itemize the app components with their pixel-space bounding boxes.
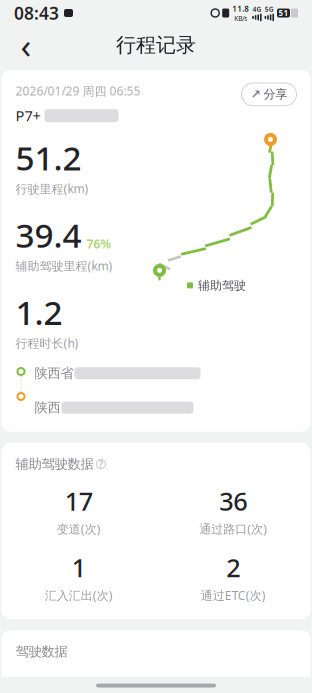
staticText: 36: [219, 484, 247, 518]
staticText: KB/s: [234, 14, 247, 23]
staticText: 14.9: [234, 670, 283, 693]
staticText: 辅助驾驶数据: [15, 456, 93, 472]
staticText: 行程记录: [116, 33, 196, 57]
staticText: 辅助驾驶里程(km): [15, 258, 112, 274]
staticText: P7+: [15, 106, 40, 125]
staticText: ↗: [250, 88, 260, 101]
staticText: 17: [65, 484, 93, 518]
staticText: 76%: [86, 236, 111, 252]
staticText: 47.7: [28, 670, 77, 693]
staticText: 5G: [265, 5, 274, 14]
staticText: 2: [226, 551, 240, 584]
staticText: 1: [72, 551, 86, 584]
staticText: 分享: [263, 87, 287, 102]
staticText: 51.2: [15, 135, 81, 180]
staticText: 行程时长(h): [15, 335, 78, 351]
staticText: 通过ETC(次): [201, 587, 266, 603]
staticText: 汇入汇出(次): [45, 587, 113, 603]
staticText: ?: [99, 458, 103, 470]
staticText: 08:43: [14, 1, 59, 24]
staticText: 陕西: [34, 399, 60, 416]
staticText: 陕西省: [34, 365, 73, 381]
staticText: 辅助驾驶: [198, 278, 246, 293]
staticText: 11.8: [232, 3, 249, 14]
staticText: 2026/01/29 周四 06:55: [15, 83, 140, 99]
staticText: 变道(次): [57, 521, 101, 537]
staticText: 驾驶数据: [15, 643, 67, 660]
staticText: 通过路口(次): [199, 521, 267, 537]
staticText: 39.4: [15, 213, 81, 257]
button[interactable]: ↗: [241, 83, 296, 106]
button[interactable]: Back: [6, 27, 46, 63]
staticText: 行驶里程(km): [15, 181, 88, 197]
staticText: 4G: [252, 5, 261, 14]
staticText: 51: [278, 8, 288, 18]
button[interactable]: 说明: [96, 459, 105, 468]
staticText: 1.2: [15, 290, 62, 334]
staticText: 113.5: [124, 670, 187, 693]
staticText: ‹: [20, 22, 31, 68]
